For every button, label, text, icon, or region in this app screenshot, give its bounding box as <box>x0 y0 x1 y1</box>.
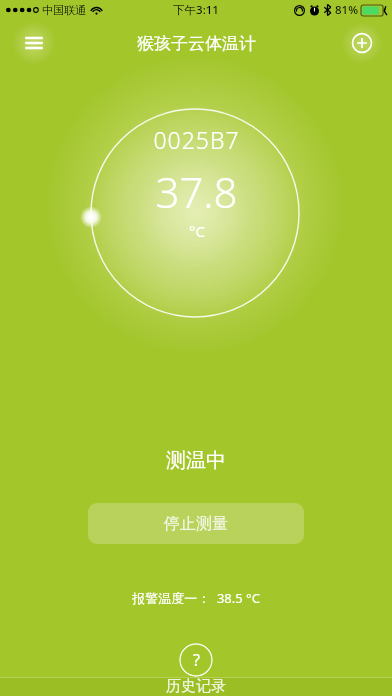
button[interactable]: Menu <box>12 21 56 65</box>
staticText: ? <box>193 649 200 671</box>
staticText: °C <box>189 221 205 241</box>
staticText: 测温中 <box>0 448 392 473</box>
button[interactable]: 历史记录 <box>0 677 392 696</box>
staticText: 停止测量 <box>164 514 228 534</box>
staticText: 81% <box>335 2 358 18</box>
staticText: 37.8 <box>155 163 238 220</box>
staticText: 0025B7 <box>153 124 240 155</box>
button[interactable]: 停止测量 <box>88 503 304 544</box>
button[interactable]: Add device <box>341 22 383 64</box>
button[interactable]: Help <box>179 643 213 677</box>
staticText: 报警温度一： 38.5 °C <box>0 589 392 607</box>
staticText: 下午3:11 <box>173 2 219 18</box>
staticText: 猴孩子云体温计 <box>137 33 256 54</box>
staticText: 中国联通 <box>42 3 86 17</box>
staticText: 历史记录 <box>166 677 226 696</box>
